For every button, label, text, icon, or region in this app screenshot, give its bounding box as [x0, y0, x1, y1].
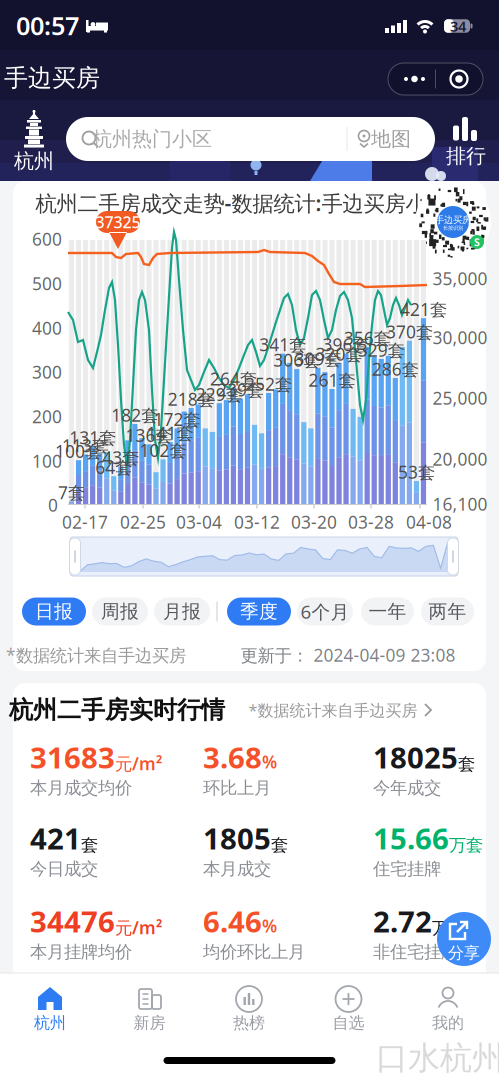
button[interactable]: 热榜: [219, 983, 279, 1035]
button[interactable]: 切换城市 杭州: [2, 108, 66, 172]
button[interactable]: 杭州热门小区: [66, 117, 435, 161]
button[interactable]: 月报: [154, 597, 210, 625]
staticText: 杭州: [34, 1013, 66, 1033]
staticText: 一年: [368, 600, 406, 623]
staticText: 02-25: [120, 510, 166, 533]
staticText: 02-17: [62, 510, 108, 533]
staticText: 229套: [196, 383, 243, 406]
staticText: 更新于： 2024-04-09 23:08: [240, 643, 455, 666]
staticText: 6个月: [300, 599, 349, 624]
staticText: 252套: [245, 372, 292, 395]
staticText: 53套: [398, 460, 435, 483]
staticText: 113套: [62, 434, 109, 457]
staticText: 200: [32, 405, 62, 428]
staticText: *数据统计来自手边买房: [6, 643, 186, 666]
staticText: 分享: [448, 943, 480, 963]
staticText: 月报: [163, 600, 201, 623]
staticText: 杭州: [14, 149, 54, 173]
staticText: 排行: [446, 144, 486, 168]
staticText: 306套: [273, 349, 320, 372]
staticText: 31683元/m²: [30, 737, 162, 776]
staticText: 03-28: [348, 510, 394, 533]
staticText: 18025套: [373, 737, 475, 776]
staticText: 370套: [386, 320, 433, 343]
button[interactable]: 自选: [318, 983, 378, 1035]
staticText: 35,000: [432, 267, 487, 290]
staticText: 396套: [322, 333, 369, 356]
staticText: 两年: [428, 600, 466, 623]
staticText: 141套: [147, 422, 194, 445]
button[interactable]: 日报: [22, 597, 86, 625]
staticText: 季度: [240, 600, 278, 623]
staticText: 264套: [210, 367, 257, 390]
staticText: 421套: [400, 298, 447, 321]
staticText: *数据统计来自手边买房: [248, 699, 417, 721]
button[interactable]: 杭州: [20, 983, 80, 1035]
staticText: 口水杭州: [376, 1038, 499, 1078]
staticText: 本月挂牌均价: [30, 941, 132, 963]
staticText: 均价环比上月: [203, 941, 305, 963]
staticText: 住宅挂牌: [373, 858, 441, 880]
staticText: 500: [32, 272, 62, 295]
staticText: 1805套: [203, 818, 288, 857]
button[interactable]: 周报: [92, 597, 148, 625]
button[interactable]: *数据统计来自手边买房: [253, 698, 443, 722]
staticText: 7套: [58, 481, 85, 504]
staticText: 309套: [294, 347, 341, 370]
button[interactable]: 一年: [361, 597, 414, 625]
staticText: 34476元/m²: [30, 901, 162, 940]
staticText: 600: [32, 227, 62, 250]
button[interactable]: 6个月: [297, 597, 353, 625]
staticText: 今年成交: [373, 777, 441, 799]
staticText: 34: [450, 16, 466, 36]
staticText: 16,100: [432, 492, 487, 515]
staticText: 341套: [259, 333, 306, 356]
staticText: 手边买房: [435, 214, 471, 226]
button[interactable]: 我的: [418, 983, 478, 1035]
staticText: 182套: [111, 403, 158, 426]
staticText: 100: [32, 449, 62, 472]
staticText: 周报: [101, 600, 139, 623]
staticText: 20,000: [432, 447, 487, 470]
staticText: 环比上月: [203, 777, 271, 799]
staticText: 300: [32, 360, 62, 383]
staticText: 我的: [432, 1013, 464, 1033]
button[interactable]: 排行: [442, 115, 490, 167]
staticText: 地图: [371, 127, 411, 151]
staticText: 136套: [125, 424, 172, 447]
staticText: 3.68%: [203, 737, 277, 776]
button[interactable]: 两年: [421, 597, 474, 625]
staticText: S: [474, 235, 480, 249]
staticText: 400: [32, 316, 62, 339]
staticText: 261套: [308, 368, 355, 391]
staticText: 本月成交均价: [30, 777, 132, 799]
staticText: 329套: [358, 338, 405, 361]
staticText: 03-04: [176, 510, 222, 533]
staticText: 43套: [102, 446, 139, 469]
staticText: 非住宅挂牌: [373, 941, 458, 963]
staticText: 102套: [139, 439, 186, 462]
button[interactable]: 季度: [227, 597, 291, 625]
staticText: 0: [48, 493, 58, 516]
staticText: 100套: [55, 440, 102, 463]
staticText: 杭州热门小区: [92, 127, 212, 151]
staticText: 杭州二手房实时行情: [9, 695, 225, 725]
staticText: 356套: [344, 326, 391, 349]
staticText: 218套: [168, 387, 215, 410]
staticText: 03-20: [291, 510, 337, 533]
staticText: 日报: [35, 600, 73, 623]
staticText: 64套: [95, 456, 132, 479]
staticText: 286套: [372, 357, 419, 380]
staticText: 热榜: [233, 1013, 265, 1033]
staticText: 239套: [217, 378, 264, 401]
staticText: 320套: [315, 342, 362, 365]
staticText: 手边买房: [4, 63, 100, 93]
staticText: 自选: [332, 1013, 364, 1033]
staticText: 03-12: [234, 510, 280, 533]
button[interactable]: 分享: [437, 912, 491, 966]
staticText: 新房: [133, 1013, 165, 1033]
staticText: 2.72万套: [373, 901, 466, 940]
staticText: 04-08: [406, 510, 452, 533]
button[interactable]: 更多与关闭: [388, 63, 483, 95]
button[interactable]: 新房: [119, 983, 179, 1035]
